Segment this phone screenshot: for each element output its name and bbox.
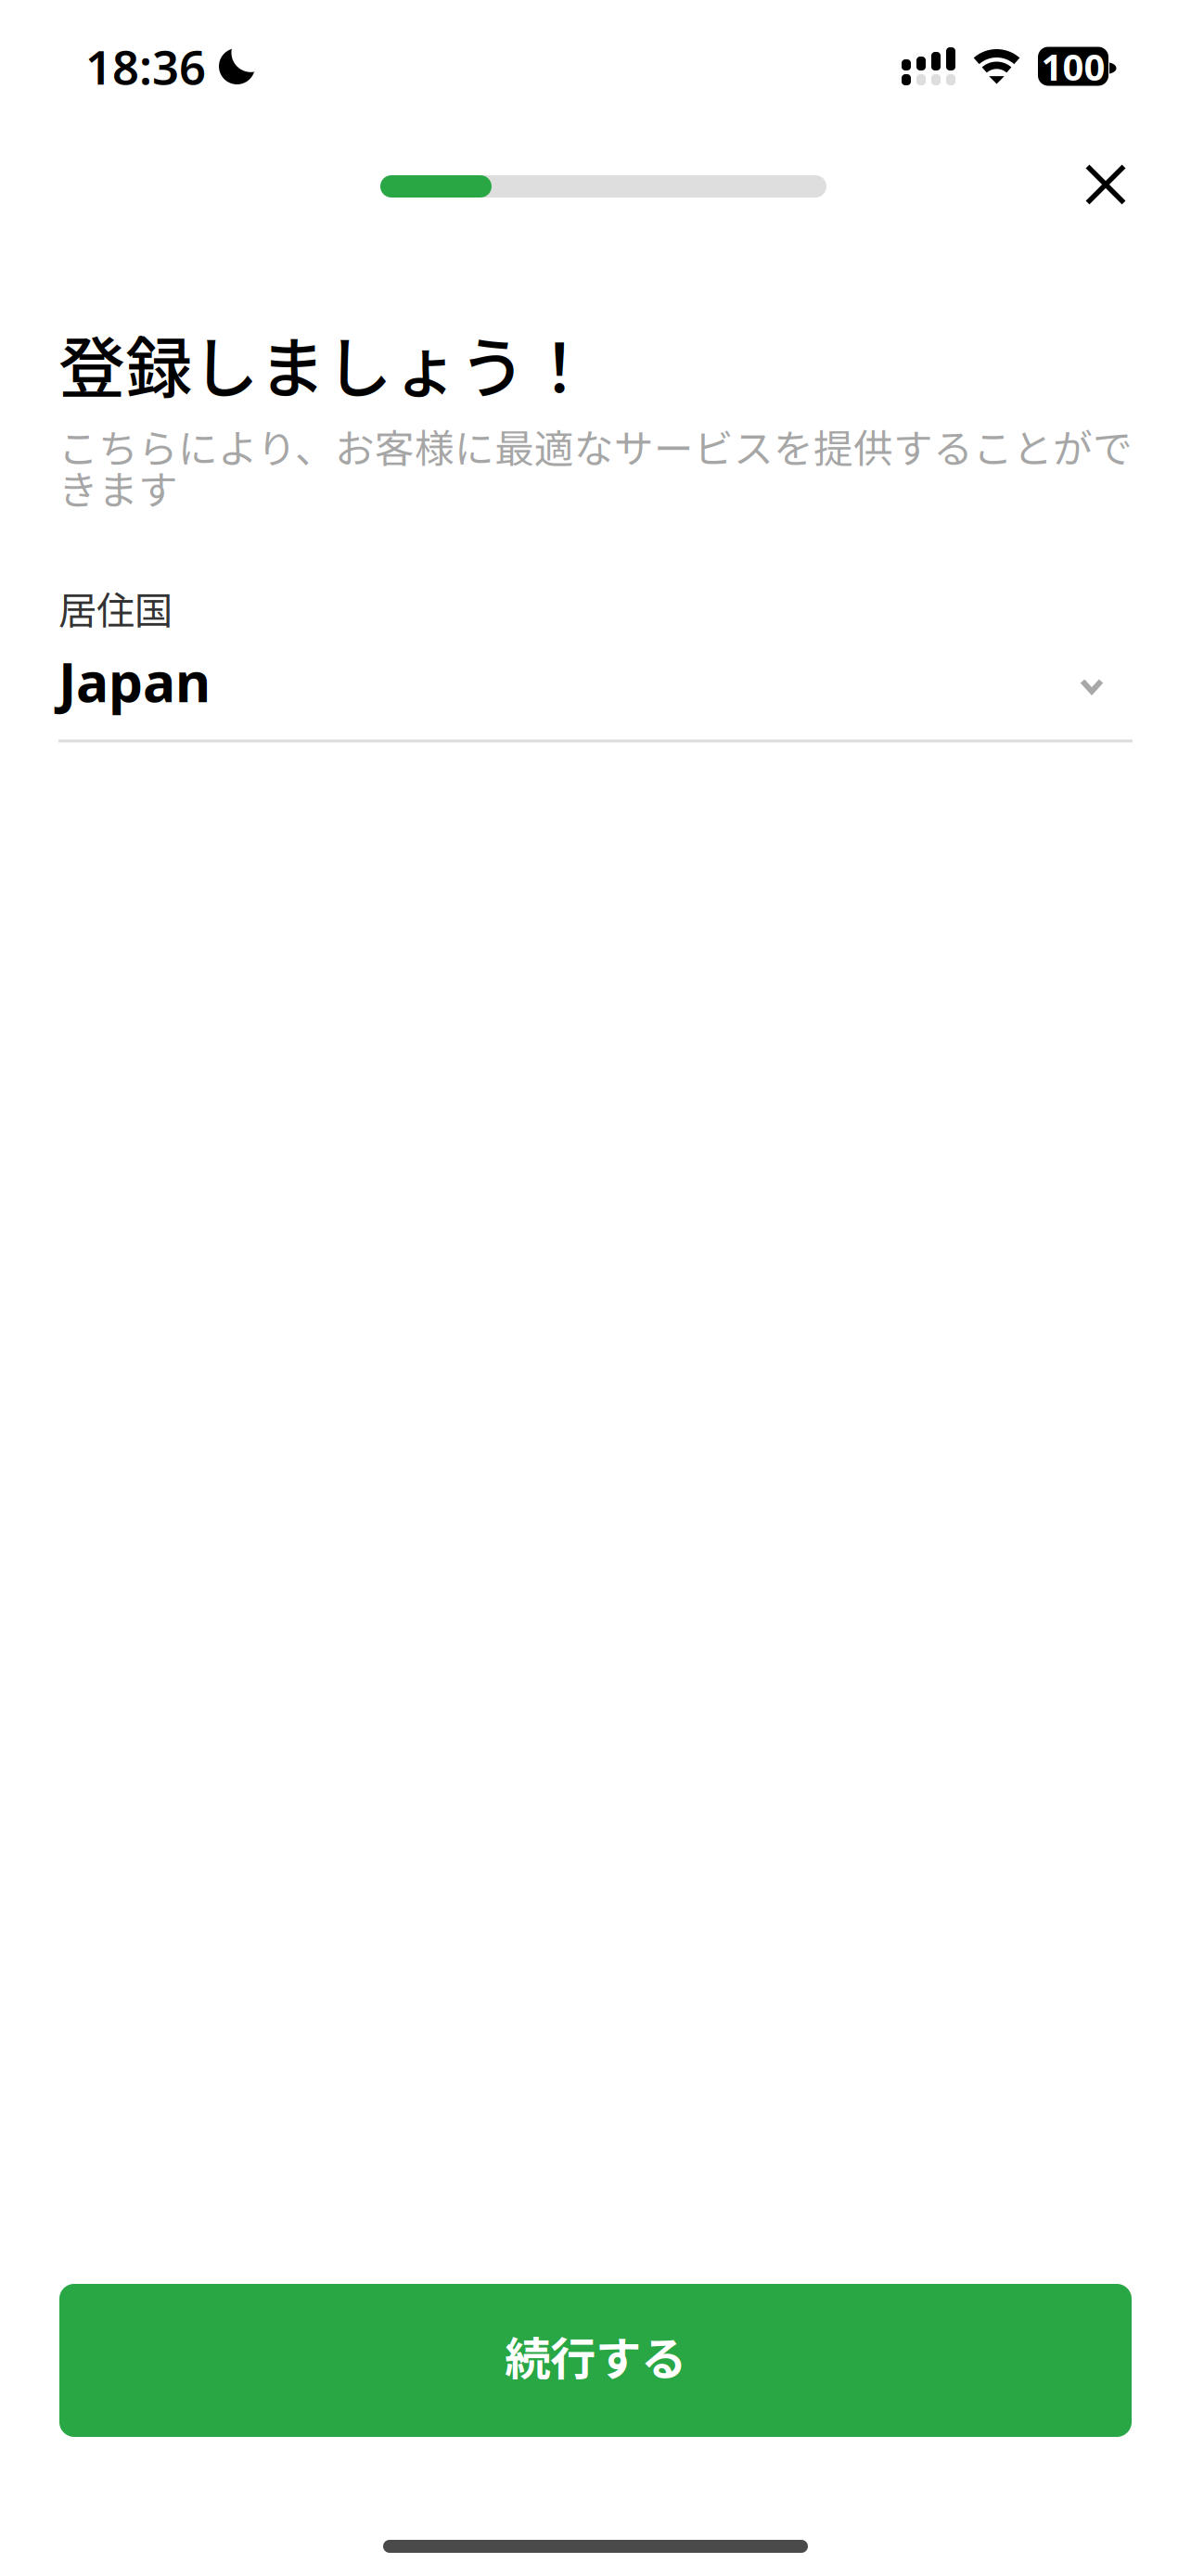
button[interactable]: 居住国 <box>58 589 1133 742</box>
staticText: 100 <box>1041 41 1105 92</box>
staticText: 18:36 <box>85 34 206 98</box>
staticText: きます <box>58 459 178 516</box>
staticText: 居住国 <box>58 580 173 636</box>
staticText: こちらにより、お客様に最適なサービスを提供することがで <box>58 417 1133 475</box>
staticText: 続行する <box>505 2323 686 2389</box>
staticText: Japan <box>58 644 211 718</box>
staticText: 登録しましょう！ <box>58 315 593 412</box>
button[interactable]: 続行する <box>59 2284 1132 2437</box>
button[interactable]: Close <box>1059 138 1152 231</box>
